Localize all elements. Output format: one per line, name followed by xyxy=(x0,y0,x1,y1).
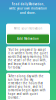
staticText: Add Motivation xyxy=(17,37,39,41)
button[interactable]: "After a long day with the sun low in th… xyxy=(6,73,50,100)
button[interactable]: Add Motivation xyxy=(7,34,49,43)
button[interactable]: "But be prepared to accept it in written… xyxy=(6,46,50,71)
staticText: "But be prepared to accept it in written… xyxy=(8,48,48,69)
staticText: Write your motivation xyxy=(13,27,42,30)
staticText: Read daily Motivation, xyxy=(11,2,44,6)
staticText: and share. xyxy=(20,11,36,15)
staticText: write your own motivation xyxy=(9,7,47,10)
staticText: "After a long day with the sun low in th… xyxy=(8,74,46,99)
